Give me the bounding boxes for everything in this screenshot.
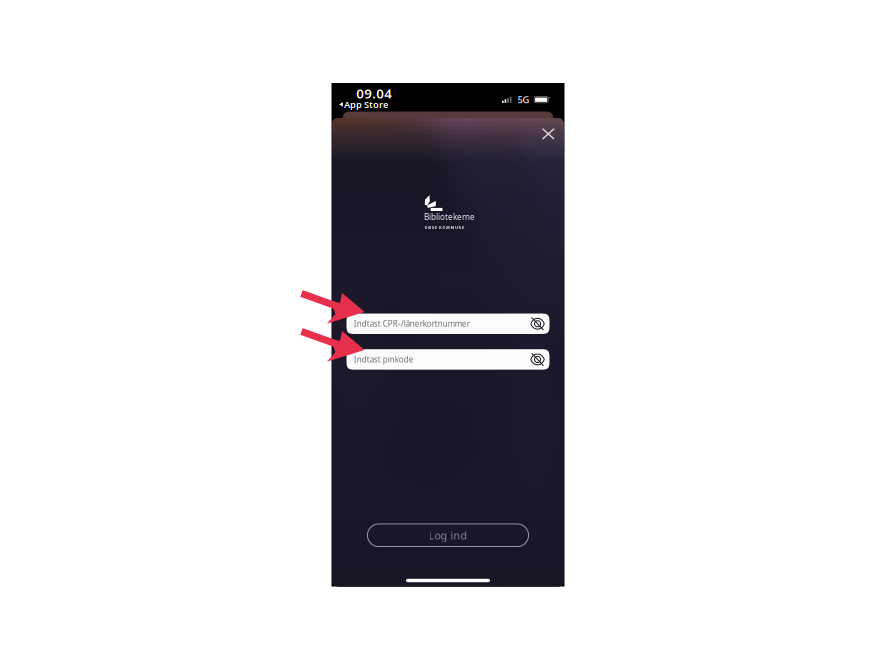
button[interactable]: Close — [535, 121, 561, 147]
staticText: Bibliotekerne — [424, 212, 475, 222]
staticText: 09.04 — [356, 84, 392, 102]
staticText: Indtast pinkode — [354, 354, 414, 365]
staticText: M — [450, 225, 454, 230]
button[interactable]: Log ind — [367, 523, 529, 547]
staticText: K — [439, 225, 442, 230]
staticText: N — [458, 225, 461, 230]
staticText: Indtast CPR-/lånerkortnummer — [354, 318, 470, 329]
staticText: K — [424, 225, 427, 230]
staticText: U — [455, 225, 458, 230]
staticText: G — [431, 225, 434, 230]
staticText: Ø — [428, 225, 431, 230]
staticText: E — [435, 225, 437, 230]
staticText: 5G — [518, 93, 530, 106]
staticText: E — [462, 225, 464, 230]
staticText: App Store — [344, 98, 388, 111]
staticText: M — [446, 225, 450, 230]
staticText: O — [442, 225, 445, 230]
staticText: Log ind — [428, 528, 467, 542]
